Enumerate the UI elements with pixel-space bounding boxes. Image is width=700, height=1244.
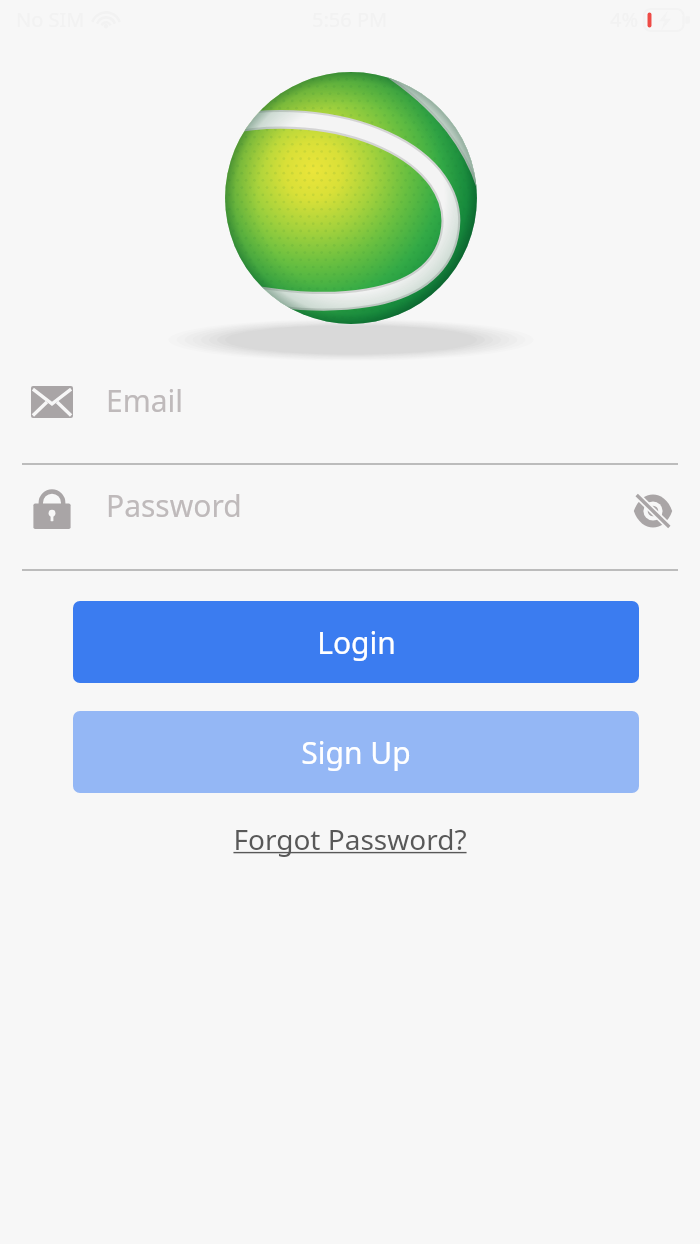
staticText: Login	[317, 622, 396, 663]
button[interactable]: Forgot Password?	[222, 820, 478, 870]
staticText: Email	[106, 380, 184, 421]
button[interactable]: Login	[73, 601, 639, 683]
button[interactable]: Password	[22, 474, 678, 569]
button[interactable]: Email	[22, 371, 678, 465]
staticText: Forgot Password?	[233, 820, 467, 858]
button[interactable]: Sign Up	[73, 711, 639, 793]
staticText: Password	[106, 485, 242, 526]
staticText: Sign Up	[301, 732, 411, 773]
button[interactable]: Show password	[616, 478, 690, 544]
